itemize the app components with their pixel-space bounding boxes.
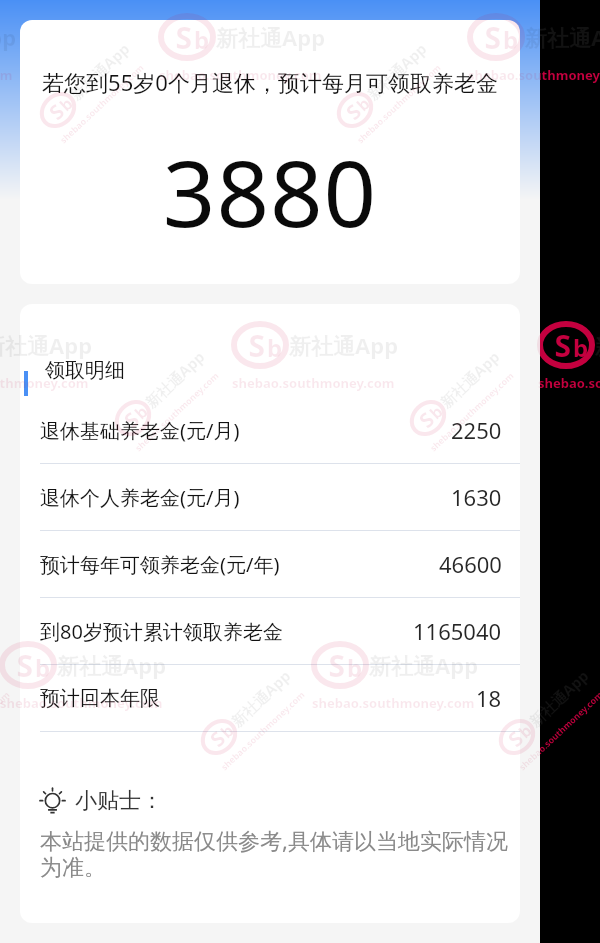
staticText: 预计回本年限 <box>40 686 160 711</box>
button[interactable]: 退休基础养老金(元/月) <box>20 397 520 463</box>
staticText: 1165040 <box>413 616 502 646</box>
staticText: 退休个人养老金(元/月) <box>40 484 240 511</box>
button[interactable]: 退休个人养老金(元/月) <box>20 464 520 530</box>
staticText: 46600 <box>439 549 502 579</box>
staticText: 小贴士： <box>75 787 163 815</box>
staticText: 退休基础养老金(元/月) <box>40 417 240 444</box>
staticText: 本站提供的数据仅供参考,具体请以当地实际情况为准。 <box>40 825 510 882</box>
staticText: 18 <box>476 683 502 713</box>
staticText: 1630 <box>451 482 502 512</box>
other: Tip <box>39 788 66 815</box>
staticText: 若您到55岁0个月退休，预计每月可领取养老金 <box>20 67 520 97</box>
staticText: 到80岁预计累计领取养老金 <box>40 618 283 645</box>
staticText: 2250 <box>451 415 502 445</box>
button[interactable]: 到80岁预计累计领取养老金 <box>20 598 520 664</box>
button[interactable]: 预计回本年限 <box>20 665 520 731</box>
staticText: 领取明细 <box>45 358 125 383</box>
button[interactable]: 预计每年可领养老金(元/年) <box>20 531 520 597</box>
staticText: 预计每年可领养老金(元/年) <box>40 551 280 578</box>
staticText: 3880 <box>20 129 520 254</box>
